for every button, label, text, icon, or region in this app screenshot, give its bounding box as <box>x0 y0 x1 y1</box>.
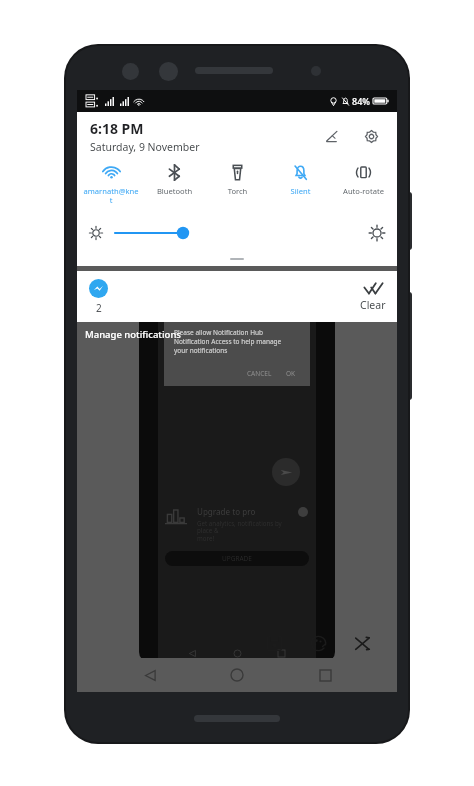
staticText: amarnath@kne t <box>79 186 143 205</box>
staticText: Auto-rotate <box>332 186 395 196</box>
button[interactable]: Dismiss <box>297 506 309 518</box>
button[interactable]: CANCEL <box>247 369 272 378</box>
staticText: 6:18 PM <box>90 119 144 138</box>
staticText: Bluetooth <box>143 186 206 196</box>
button[interactable]: UPGRADE <box>165 551 309 566</box>
button[interactable]: Silent <box>269 160 332 214</box>
button[interactable]: Brightness <box>115 223 191 243</box>
button[interactable]: Compose <box>272 458 300 486</box>
button[interactable]: Settings <box>356 121 386 151</box>
staticText: Please allow Notification Hub Notificati… <box>174 328 282 355</box>
staticText: 84% <box>352 95 370 107</box>
button[interactable]: Theme <box>305 630 331 656</box>
button[interactable]: Torch <box>206 160 269 214</box>
button[interactable]: Recents <box>310 660 340 690</box>
button[interactable]: Home <box>222 660 252 690</box>
button[interactable]: Clear <box>360 282 386 312</box>
button[interactable]: Auto-rotate <box>332 160 395 214</box>
button[interactable]: Shuffle <box>349 630 375 656</box>
staticText: Get analytics, notifications by place & … <box>197 519 297 543</box>
button[interactable]: Back <box>183 644 202 662</box>
staticText: Saturday, 9 November <box>90 140 200 154</box>
button[interactable]: OK <box>286 369 296 378</box>
button[interactable]: Back <box>135 660 165 690</box>
button[interactable]: 2 <box>89 279 108 315</box>
button[interactable]: amarnath@kne t <box>79 160 143 214</box>
staticText: Silent <box>269 186 332 196</box>
button[interactable]: Bluetooth <box>143 160 206 214</box>
staticText: Upgrade to pro <box>197 506 256 517</box>
button[interactable]: Recents <box>272 644 291 662</box>
staticText: Clear <box>360 298 386 312</box>
staticText: 2 <box>96 301 102 315</box>
button[interactable]: Home <box>228 644 247 662</box>
button[interactable]: Edit <box>316 121 346 151</box>
staticText: UPGRADE <box>222 554 252 563</box>
button[interactable]: Manage notifications <box>77 328 189 341</box>
staticText: Torch <box>206 186 269 196</box>
